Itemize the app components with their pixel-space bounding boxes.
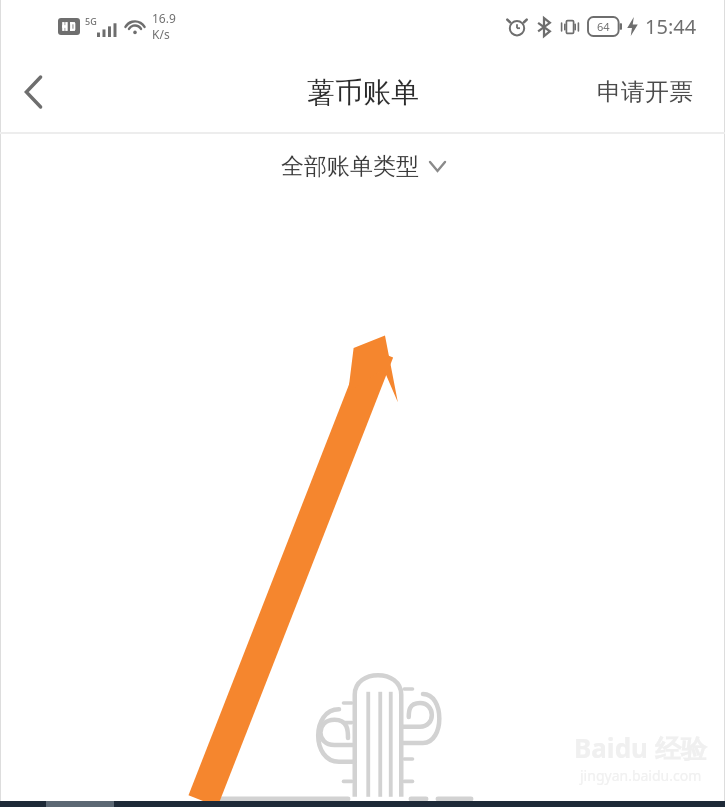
staticText: 申请开票 [597, 77, 693, 107]
button[interactable]: Back [0, 59, 66, 125]
button[interactable]: 全部账单类型 [281, 152, 445, 181]
staticText: 5G [85, 15, 97, 27]
staticText: jingyan.baidu.com [580, 766, 702, 785]
staticText: 64 [597, 19, 610, 34]
button[interactable]: 薯币账单 [307, 75, 419, 110]
staticText: Baidu 经验 [574, 730, 707, 766]
staticText: 15:44 [645, 13, 697, 40]
staticText: K/s [152, 26, 170, 42]
staticText: 全部账单类型 [281, 152, 419, 181]
button[interactable]: 申请开票 [597, 77, 693, 107]
staticText: 16.9 [152, 10, 176, 26]
